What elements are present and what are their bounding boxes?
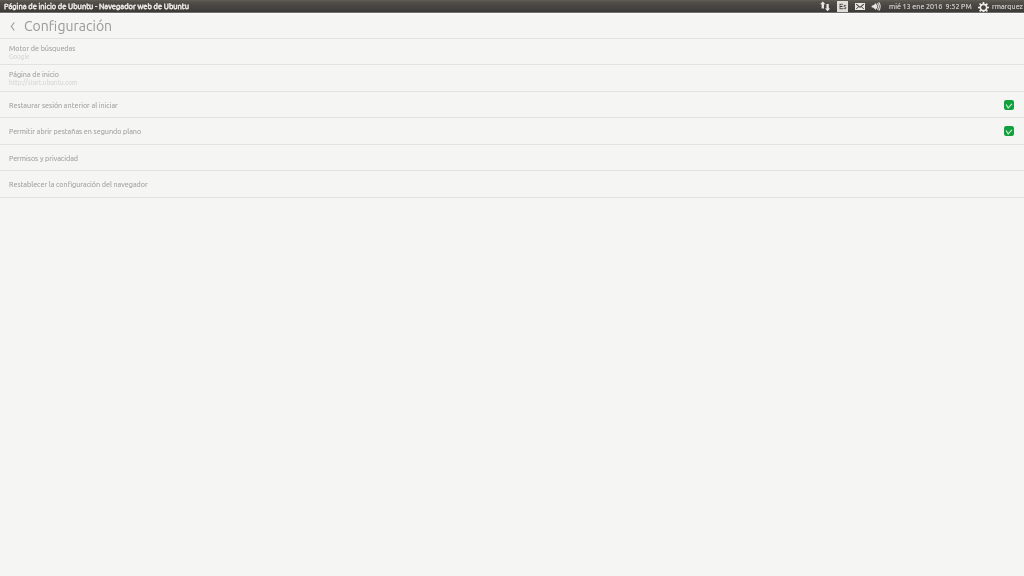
button[interactable]: Restaurar sesión anterior al iniciar: [0, 92, 1024, 118]
staticText: rmarquez: [992, 2, 1023, 10]
other: Messages: [855, 3, 865, 10]
button[interactable]: Permitir abrir pestañas en segundo plano: [0, 118, 1024, 145]
button[interactable]: mié 13 ene 2016 9:52 PM: [887, 0, 970, 12]
staticText: http://start.ubuntu.com: [9, 79, 78, 86]
button[interactable]: Motor de búsquedas: [0, 39, 1024, 65]
button[interactable]: Página de inicio: [0, 65, 1024, 92]
staticText: Configuración: [24, 18, 113, 34]
staticText: Permisos y privacidad: [9, 154, 1014, 162]
other: Network: [820, 1, 831, 12]
button[interactable]: Messages: [853, 0, 863, 12]
other: System settings: [978, 2, 989, 13]
button[interactable]: Restablecer la configuración del navegad…: [0, 171, 1024, 198]
staticText: Página de inicio: [9, 70, 59, 78]
other: Enabled: [1004, 100, 1014, 110]
staticText: Google: [9, 53, 30, 60]
staticText: mié 13 ene 2016 9:52 PM: [889, 2, 972, 10]
other: Keyboard layout: [837, 1, 848, 12]
button[interactable]: System settings: [976, 0, 1007, 12]
staticText: Es: [839, 2, 847, 11]
button[interactable]: Back: [9, 21, 16, 32]
button[interactable]: Keyboard layout: [837, 0, 848, 12]
staticText: Restaurar sesión anterior al iniciar: [9, 101, 1004, 109]
button[interactable]: Volume: [869, 0, 881, 12]
staticText: Restablecer la configuración del navegad…: [9, 180, 1014, 188]
staticText: Permitir abrir pestañas en segundo plano: [9, 127, 1004, 135]
button[interactable]: Network: [818, 0, 829, 12]
other: Enabled: [1004, 126, 1014, 136]
button[interactable]: Permisos y privacidad: [0, 145, 1024, 171]
other: Volume: [870, 2, 882, 11]
staticText: Página de inicio de Ubuntu - Navegador w…: [4, 2, 190, 10]
staticText: Motor de búsquedas: [9, 44, 76, 52]
